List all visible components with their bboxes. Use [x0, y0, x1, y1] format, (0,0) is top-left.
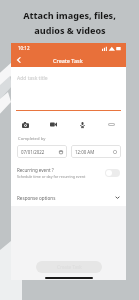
button[interactable]: Record audio — [68, 116, 97, 133]
staticText: Response options — [17, 195, 56, 201]
staticText: Completed by — [18, 136, 46, 142]
button[interactable]: Attach file — [97, 116, 126, 133]
button[interactable]: Create Task — [36, 261, 102, 273]
button[interactable]: Back — [11, 53, 27, 67]
button[interactable]: 07/01/2022 — [17, 145, 67, 158]
staticText: Add task title — [17, 75, 48, 82]
staticText: 12:00 AM — [75, 149, 95, 155]
staticText: audios & videos — [34, 24, 106, 36]
staticText: Attach images, files, — [23, 9, 116, 21]
button[interactable]: Recurring event toggle — [105, 169, 120, 177]
staticText: Schedule time or day for recurring event — [17, 174, 86, 179]
staticText: Create Task — [53, 57, 83, 64]
button[interactable]: Record video — [39, 116, 68, 133]
button[interactable]: 12:00 AM — [71, 145, 121, 158]
staticText: 07/01/2022 — [21, 149, 45, 155]
staticText: 10:12 — [18, 45, 30, 51]
button[interactable]: Response options — [11, 190, 126, 205]
button[interactable]: Take photo — [11, 116, 39, 133]
staticText: Recurring event ? — [17, 167, 54, 173]
